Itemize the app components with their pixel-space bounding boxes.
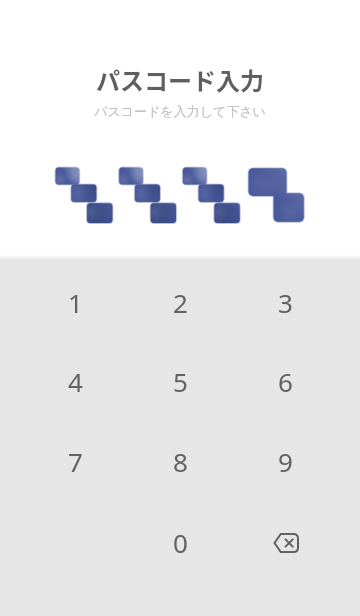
staticText: パスコードを入力して下さい [94,103,266,119]
staticText: 5 [173,364,188,399]
staticText: パスコード入力 [96,62,264,97]
button[interactable]: 4 [40,355,110,407]
button[interactable]: 9 [250,435,320,487]
staticText: 7 [68,444,83,479]
button[interactable]: 7 [40,435,110,487]
button[interactable]: 1 [40,276,110,328]
button[interactable]: Backspace [251,517,321,569]
staticText: 8 [173,444,188,479]
staticText: 3 [278,285,293,320]
button[interactable]: 6 [250,355,320,407]
button[interactable]: 3 [250,276,320,328]
button[interactable]: 0 [145,516,215,568]
staticText: 9 [278,444,293,479]
button[interactable]: 5 [145,355,215,407]
button[interactable]: 2 [145,276,215,328]
button[interactable]: 8 [145,435,215,487]
staticText: 4 [68,364,83,399]
staticText: 0 [173,525,188,560]
staticText: 1 [68,285,83,320]
staticText: 2 [173,285,188,320]
staticText: 6 [278,364,293,399]
